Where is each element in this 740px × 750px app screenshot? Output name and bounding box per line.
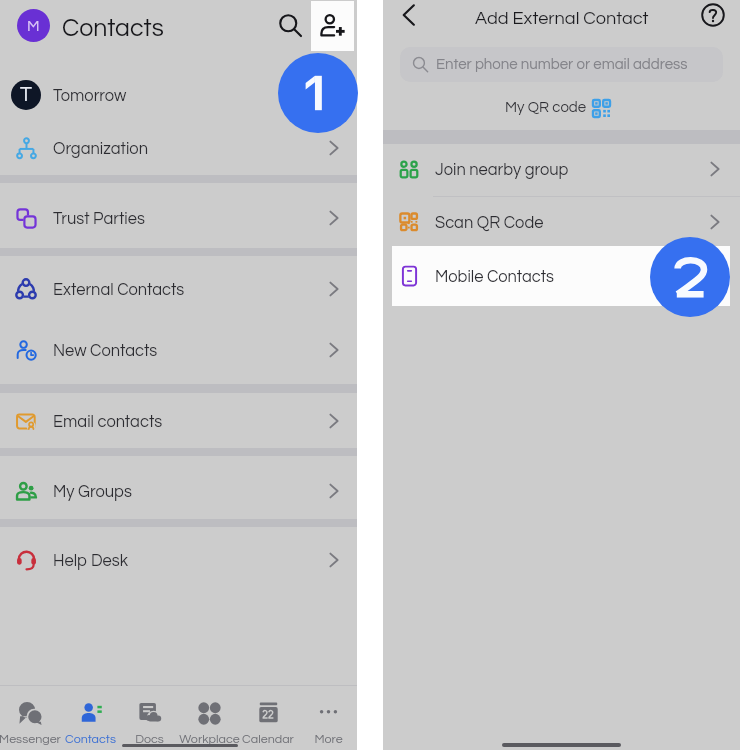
button[interactable]: Enter phone number or email address bbox=[400, 47, 723, 82]
button[interactable]: T bbox=[0, 69, 357, 121]
button[interactable]: More bbox=[298, 686, 358, 750]
staticText: Trust Parties bbox=[53, 210, 145, 227]
staticText: My Groups bbox=[53, 483, 132, 500]
staticText: M bbox=[27, 18, 40, 34]
staticText: Email contacts bbox=[53, 413, 163, 430]
button[interactable]: Email contacts bbox=[0, 395, 357, 447]
button[interactable]: Help Desk bbox=[0, 534, 357, 586]
button[interactable]: Back bbox=[387, 0, 431, 37]
button[interactable]: Calendar bbox=[238, 686, 298, 750]
staticText: Contacts bbox=[65, 733, 116, 746]
button[interactable]: Join nearby group bbox=[383, 143, 740, 195]
button[interactable]: Scan QR Code bbox=[383, 196, 740, 248]
button[interactable]: Trust Parties bbox=[0, 192, 357, 244]
button[interactable]: Profile bbox=[17, 9, 50, 42]
staticText: Workplace bbox=[179, 733, 240, 746]
staticText: External Contacts bbox=[53, 281, 185, 298]
staticText: Calendar bbox=[242, 733, 294, 746]
staticText: Mobile Contacts bbox=[435, 268, 555, 285]
staticText: Help Desk bbox=[53, 552, 128, 569]
button[interactable]: Mobile Contacts bbox=[392, 246, 730, 306]
button[interactable]: Workplace bbox=[179, 686, 239, 750]
staticText: Tomorrow bbox=[53, 87, 127, 104]
staticText: Docs bbox=[135, 733, 164, 746]
staticText: Enter phone number or email address bbox=[436, 57, 688, 72]
button[interactable]: Help bbox=[691, 0, 735, 37]
staticText: More bbox=[314, 733, 343, 746]
staticText: My QR code bbox=[505, 100, 587, 115]
button[interactable]: External Contacts bbox=[0, 263, 357, 315]
staticText: Contacts bbox=[62, 15, 164, 41]
staticText: Organization bbox=[53, 140, 148, 157]
button[interactable]: Contacts bbox=[60, 686, 120, 750]
staticText: Join nearby group bbox=[435, 161, 569, 178]
staticText: Scan QR Code bbox=[435, 214, 544, 231]
button[interactable]: Add contact bbox=[311, 1, 354, 51]
button[interactable]: My Groups bbox=[0, 465, 357, 517]
staticText: T bbox=[20, 84, 32, 106]
button[interactable]: New Contacts bbox=[0, 324, 357, 376]
button[interactable]: Messenger bbox=[0, 686, 60, 750]
button[interactable]: Search bbox=[268, 3, 312, 47]
staticText: Add External Contact bbox=[475, 9, 649, 28]
button[interactable]: My QR code bbox=[505, 99, 610, 116]
button[interactable]: Docs bbox=[119, 686, 179, 750]
button[interactable]: Organization bbox=[0, 122, 357, 174]
staticText: Messenger bbox=[0, 733, 61, 746]
staticText: New Contacts bbox=[53, 342, 158, 359]
